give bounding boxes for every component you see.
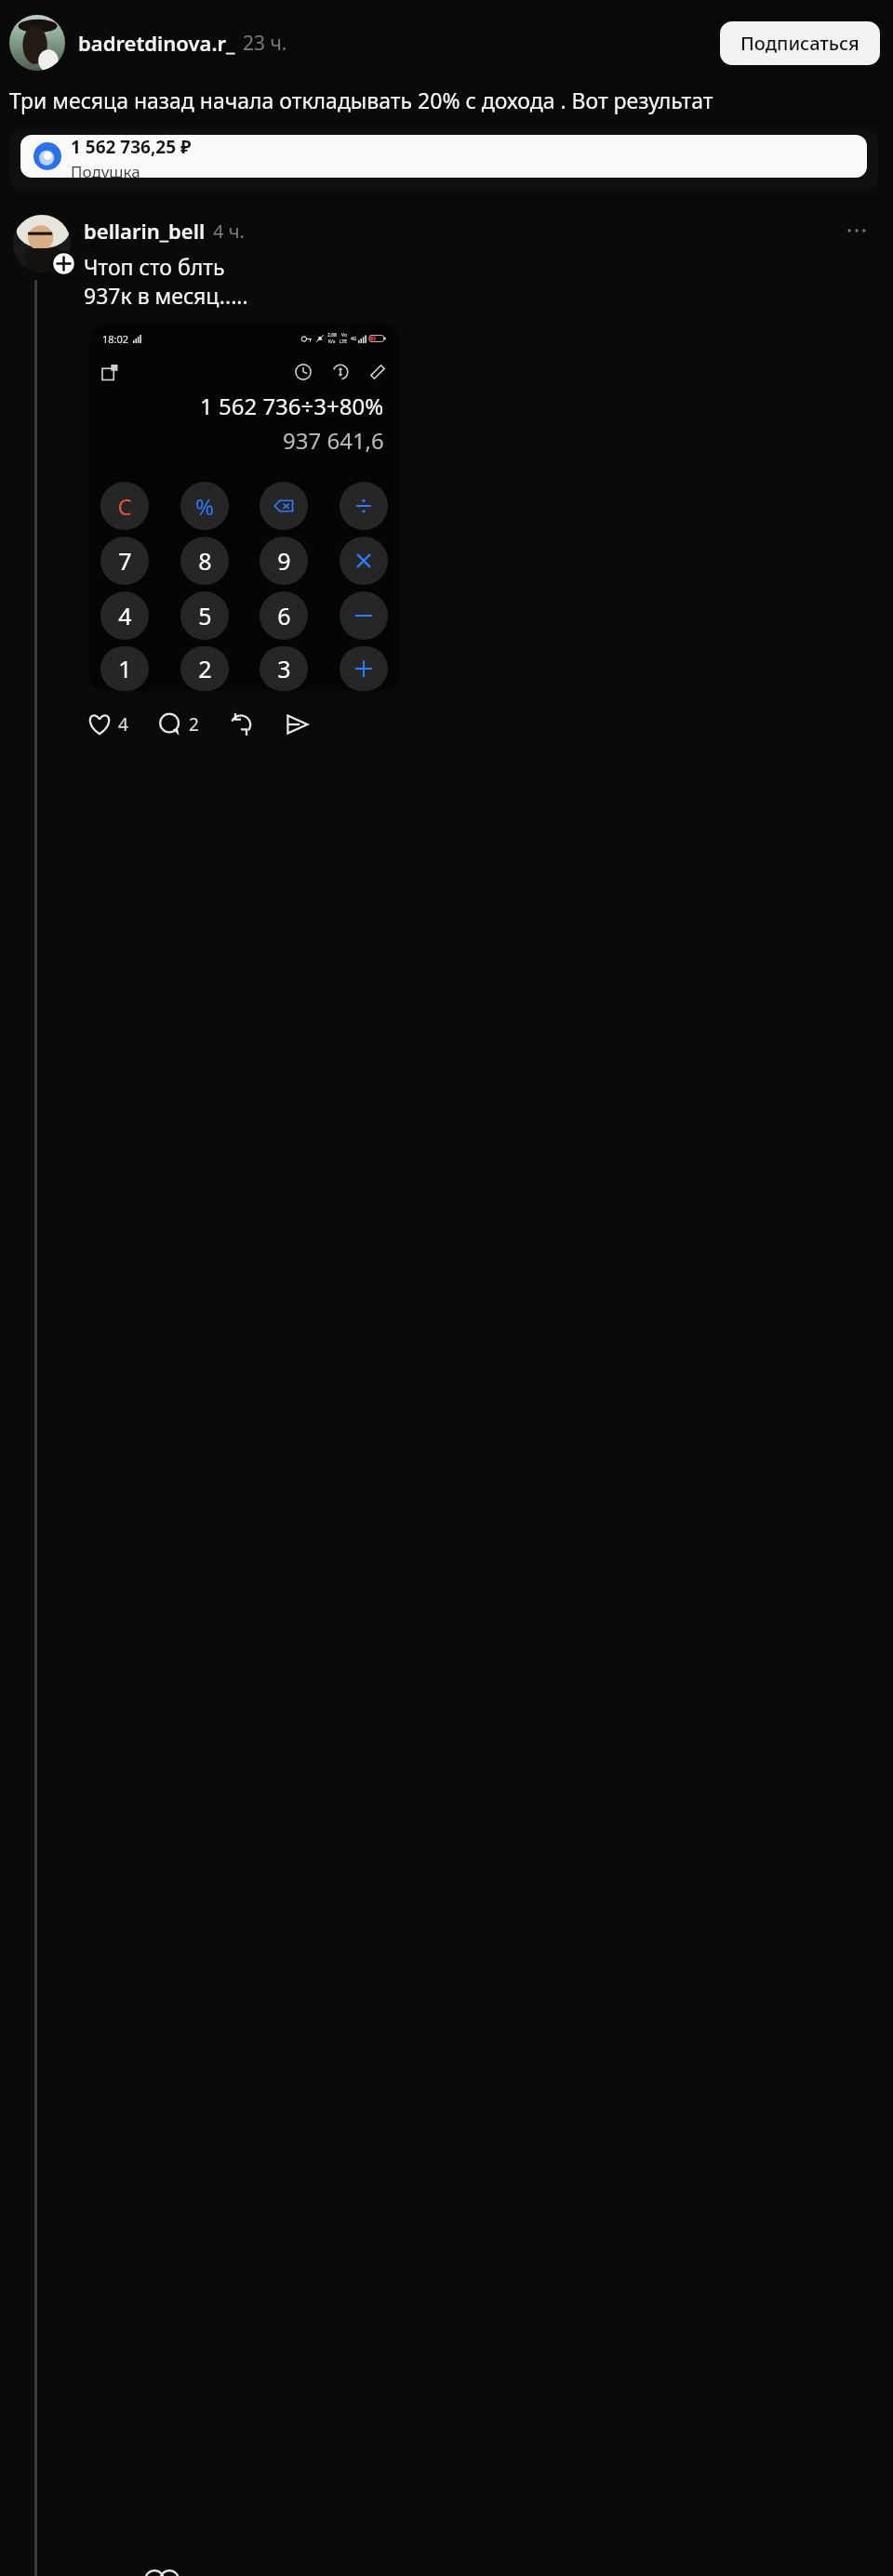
staticText: bellarin_bell <box>84 217 206 245</box>
button[interactable]: Reply <box>154 707 201 742</box>
button[interactable]: 7 <box>100 537 149 585</box>
staticText: 1 <box>118 653 132 684</box>
staticText: Три месяца назад начала откладывать 20% … <box>9 86 873 114</box>
button[interactable] <box>260 482 308 530</box>
button[interactable] <box>340 646 388 691</box>
staticText: 8 <box>198 545 212 577</box>
button[interactable]: 1 <box>100 646 149 691</box>
staticText: LTE <box>340 339 348 345</box>
button[interactable]: Repost <box>225 707 257 742</box>
button[interactable]: C <box>100 482 149 530</box>
button[interactable]: More options <box>841 215 873 246</box>
staticText: 1 562 736÷3+80% <box>200 391 384 421</box>
staticText: Подписаться <box>740 31 860 56</box>
staticText: % <box>195 491 214 522</box>
staticText: 6 <box>277 600 291 631</box>
staticText: 7 <box>118 545 132 577</box>
button[interactable] <box>340 482 388 530</box>
button[interactable]: 6 <box>260 591 308 640</box>
staticText: 2,68 <box>327 332 337 339</box>
staticText: 937 641,6 <box>283 425 384 456</box>
staticText: Подушка <box>71 161 140 178</box>
button[interactable]: 3 <box>260 646 308 691</box>
button[interactable]: 9 <box>260 537 308 585</box>
button[interactable]: 1 562 736,25 ₽ <box>9 129 878 191</box>
button[interactable] <box>340 591 388 640</box>
button[interactable]: % <box>180 482 229 530</box>
staticText: C <box>117 491 132 522</box>
staticText: 18:02 <box>102 332 129 346</box>
button[interactable] <box>340 537 388 585</box>
button[interactable]: Like <box>84 707 130 742</box>
staticText: 4G <box>351 336 357 342</box>
staticText: 4 ч. <box>213 219 245 244</box>
button[interactable]: 2 <box>180 646 229 691</box>
button[interactable]: 4 <box>100 591 149 640</box>
staticText: Vo <box>341 332 347 339</box>
staticText: 23 ч. <box>243 30 287 57</box>
staticText: Чтоп сто блть 937к в месяц..... <box>84 252 248 311</box>
staticText: 4 <box>118 712 128 737</box>
staticText: 4 <box>118 600 132 631</box>
staticText: badretdinova.r_ <box>78 29 235 57</box>
button[interactable]: 8 <box>180 537 229 585</box>
staticText: K/s <box>328 339 336 345</box>
button[interactable]: Подписаться <box>720 21 880 65</box>
staticText: 5 <box>198 600 212 631</box>
button[interactable]: Share <box>281 707 313 742</box>
staticText: 1 562 736,25 ₽ <box>71 135 192 159</box>
button[interactable]: 5 <box>180 591 229 640</box>
staticText: 9 <box>277 545 291 577</box>
staticText: 3 <box>277 653 291 684</box>
staticText: 2 <box>189 712 199 737</box>
staticText: 2 <box>198 653 212 684</box>
